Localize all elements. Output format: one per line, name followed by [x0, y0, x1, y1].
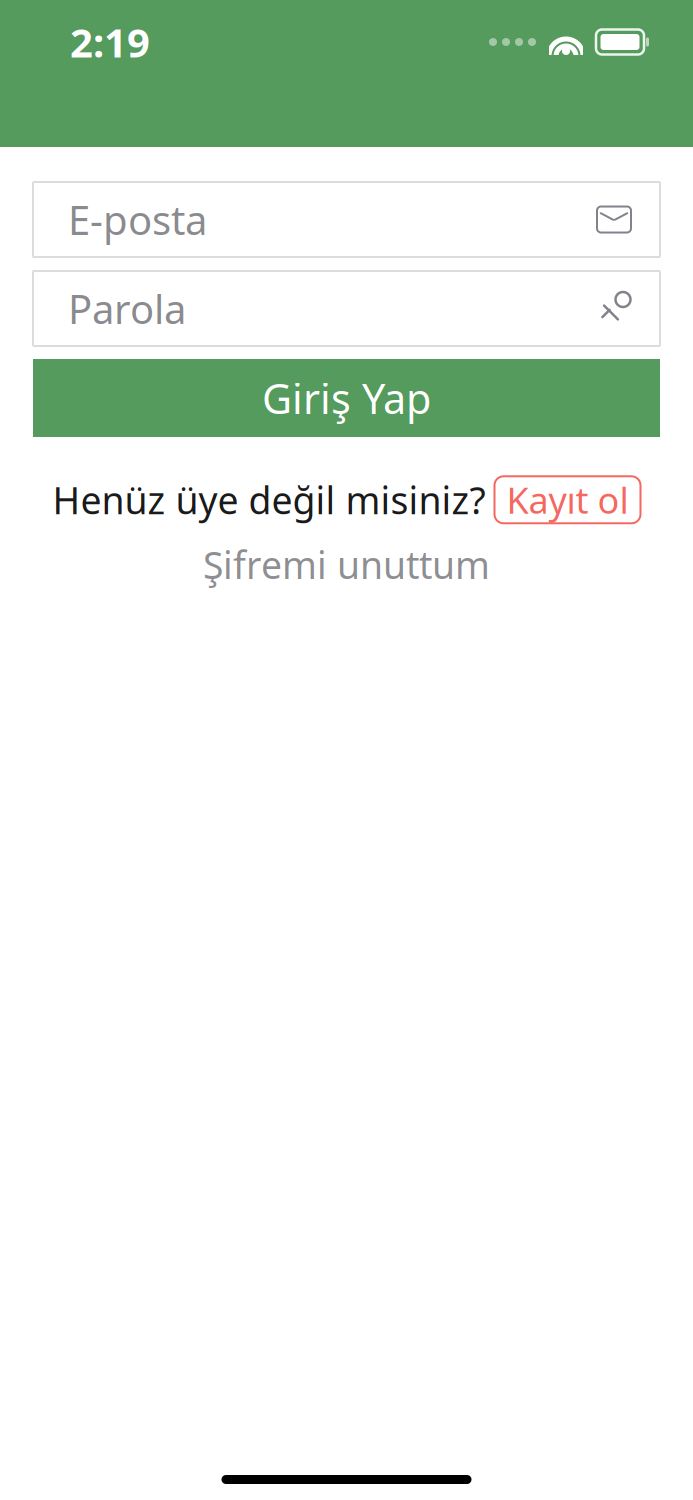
staticText: Parola: [68, 282, 186, 335]
button[interactable]: Parola: [33, 271, 660, 346]
staticText: Giriş Yap: [262, 371, 431, 425]
button[interactable]: E-posta: [33, 182, 660, 257]
staticText: 2:19: [70, 15, 150, 68]
button[interactable]: Kayıt ol: [494, 476, 640, 523]
staticText: Şifremi unuttum: [203, 540, 490, 589]
button[interactable]: Giriş Yap: [33, 359, 660, 437]
staticText: Kayıt ol: [506, 476, 628, 524]
staticText: E-posta: [68, 193, 207, 246]
button[interactable]: Şifremi unuttum: [33, 543, 660, 587]
staticText: Henüz üye değil misiniz?: [52, 475, 485, 525]
